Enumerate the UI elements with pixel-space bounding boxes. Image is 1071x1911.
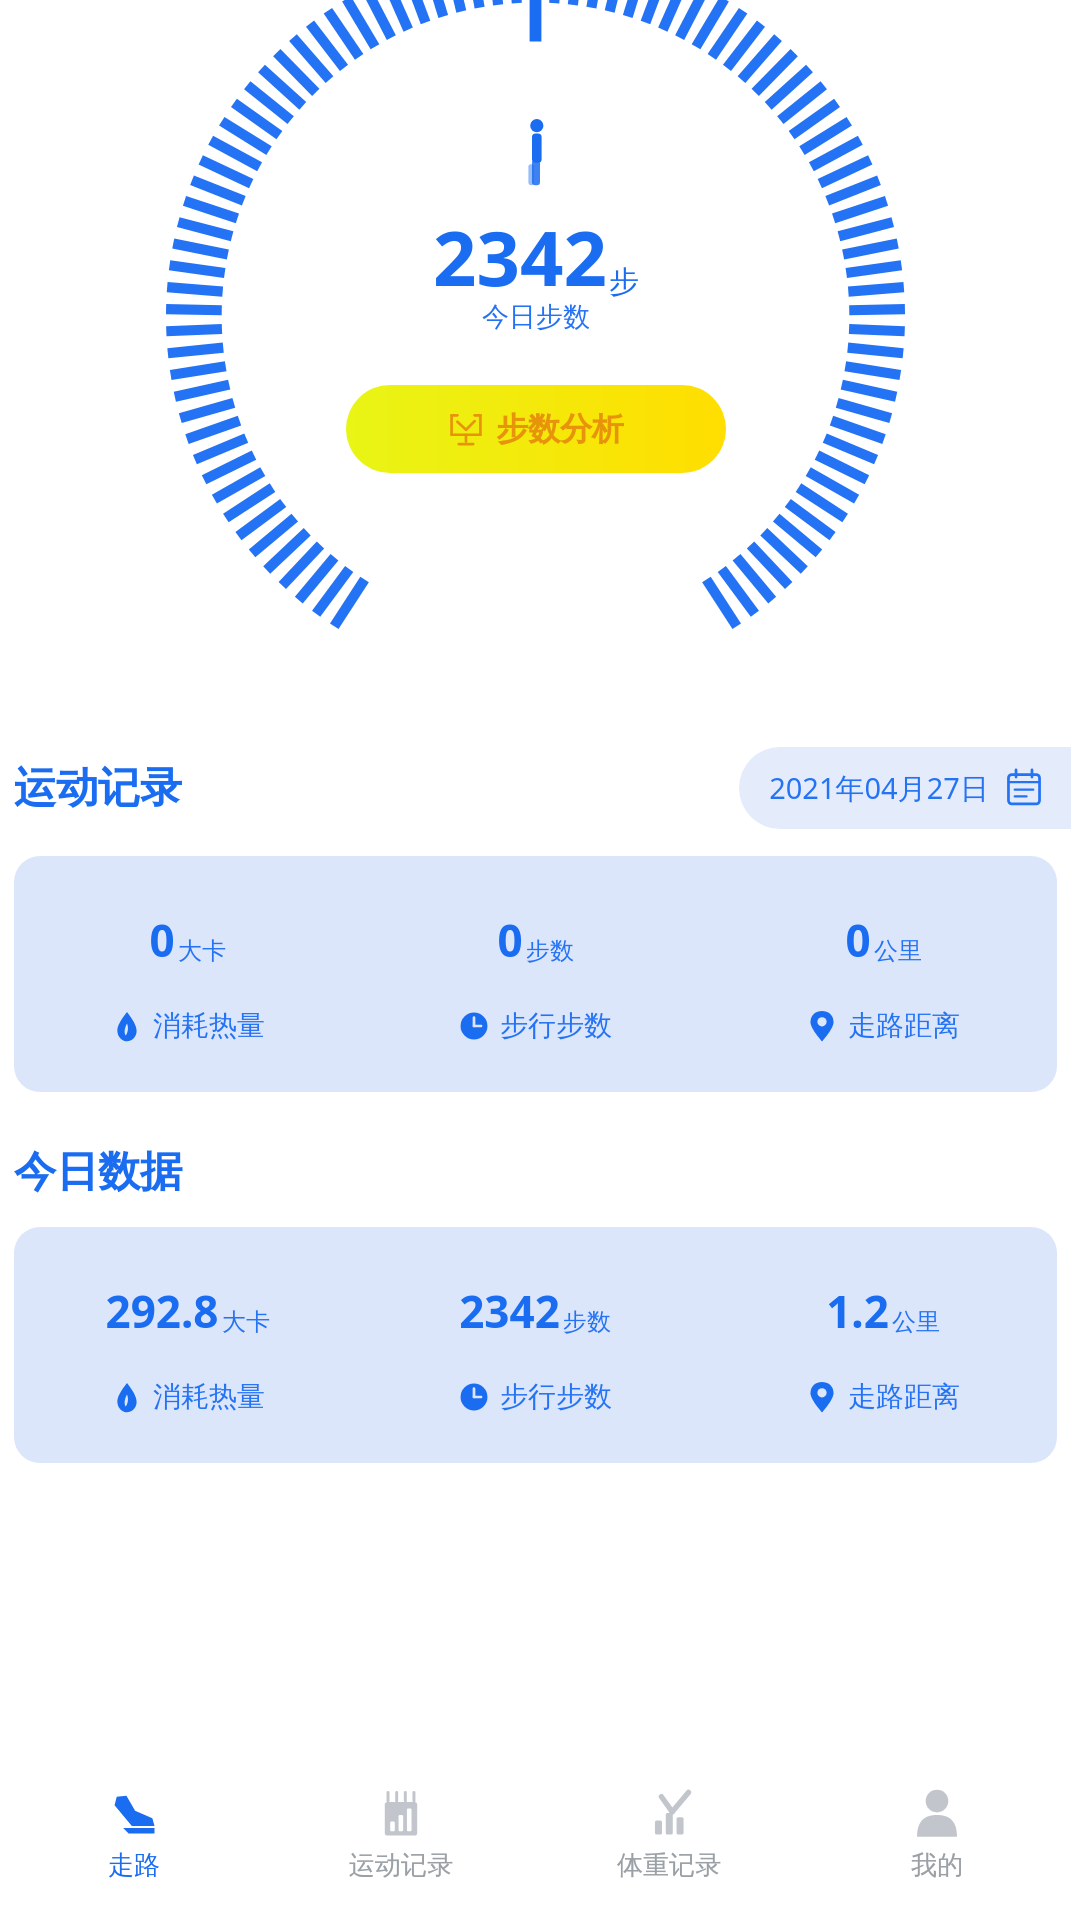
staticText: 公里 [892, 1307, 940, 1337]
button[interactable]: 292.8 [14, 1227, 1057, 1463]
staticText: 运动记录 [349, 1849, 453, 1882]
staticText: 走路 [108, 1849, 160, 1882]
staticText: 走路距离 [848, 1008, 960, 1043]
staticText: 体重记录 [617, 1849, 721, 1882]
button[interactable]: 走路 [0, 1771, 267, 1911]
staticText: 公里 [874, 936, 922, 966]
staticText: 0 [149, 910, 175, 970]
staticText: 2342 [433, 205, 607, 309]
staticText: 大卡 [222, 1307, 270, 1337]
staticText: 我的 [911, 1849, 963, 1882]
staticText: 消耗热量 [153, 1379, 265, 1414]
staticText: 消耗热量 [153, 1008, 265, 1043]
staticText: 今日数据 [14, 1146, 182, 1199]
staticText: 步数分析 [496, 409, 624, 449]
staticText: 2021年04月27日 [769, 768, 989, 808]
staticText: 2342 [459, 1281, 560, 1341]
staticText: 步数 [526, 936, 574, 966]
button[interactable]: 2021年04月27日 [739, 747, 1071, 829]
staticText: 大卡 [178, 936, 226, 966]
staticText: 今日步数 [482, 300, 590, 334]
staticText: 走路距离 [848, 1379, 960, 1414]
staticText: 0 [845, 910, 871, 970]
button[interactable]: 运动记录 [267, 1771, 535, 1911]
staticText: 步行步数 [500, 1379, 612, 1414]
button[interactable]: 我的 [803, 1771, 1071, 1911]
button[interactable]: 0 [14, 856, 1057, 1092]
button[interactable]: 步数分析 [346, 385, 726, 473]
staticText: 运动记录 [14, 762, 182, 815]
staticText: 步 [609, 263, 639, 301]
staticText: 1.2 [826, 1281, 889, 1341]
other: Select date [1003, 767, 1045, 809]
staticText: 步行步数 [500, 1008, 612, 1043]
button[interactable]: 体重记录 [535, 1771, 803, 1911]
staticText: 0 [497, 910, 523, 970]
staticText: 步数 [563, 1307, 611, 1337]
staticText: 292.8 [105, 1281, 219, 1341]
